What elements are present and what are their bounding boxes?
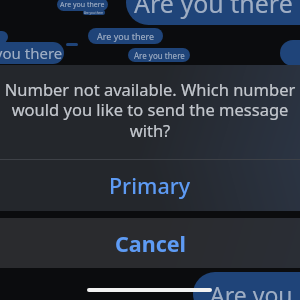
staticText: Cancel (115, 229, 186, 258)
staticText: Are you there (0, 43, 63, 63)
button[interactable]: Primary (0, 160, 300, 211)
staticText: Are you there (60, 0, 105, 10)
staticText: Primary (109, 171, 191, 200)
staticText: Are you there (97, 30, 155, 42)
staticText: Are you there (84, 11, 104, 15)
staticText: Are you there (210, 279, 300, 300)
staticText: Are you there (134, 0, 293, 20)
staticText: Are you there (134, 50, 185, 61)
button[interactable]: Cancel (0, 218, 300, 268)
staticText: Number not available. Which number would… (4, 78, 296, 142)
